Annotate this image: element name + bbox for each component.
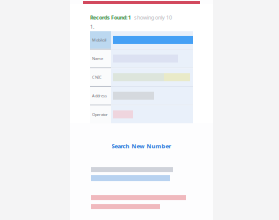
staticText: CNIC bbox=[92, 74, 102, 80]
staticText: Name bbox=[92, 56, 103, 61]
staticText: Search New Number bbox=[111, 142, 171, 150]
staticText: showing only 10 bbox=[134, 14, 172, 21]
staticText: Mobile# bbox=[92, 37, 107, 43]
staticText: Operator bbox=[92, 112, 108, 117]
button[interactable]: Search New Number bbox=[70, 123, 213, 158]
staticText: 1. bbox=[90, 23, 94, 30]
staticText: Address bbox=[92, 93, 107, 98]
staticText: Records Found: 1 bbox=[90, 14, 131, 21]
